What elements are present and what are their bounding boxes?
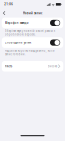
staticText: Новий запис xyxy=(23,11,42,15)
staticText: Сповіщення увімк xyxy=(5,41,31,44)
staticText: Якість xyxy=(5,64,12,68)
staticText: Зберігає звук у повній якості разом з об… xyxy=(5,29,55,36)
staticText: Надсилає коротке нагадування, коли запис… xyxy=(5,49,55,56)
button[interactable]: Back xyxy=(0,9,9,18)
button[interactable]: Мікрофон завжди xyxy=(0,18,65,28)
button[interactable]: Сповіщення увімк xyxy=(0,37,65,48)
staticText: Мікрофон завжди xyxy=(5,21,29,25)
staticText: 21:06 xyxy=(4,2,13,6)
staticText: Висока xyxy=(48,64,57,68)
button[interactable]: Якість xyxy=(0,61,65,72)
